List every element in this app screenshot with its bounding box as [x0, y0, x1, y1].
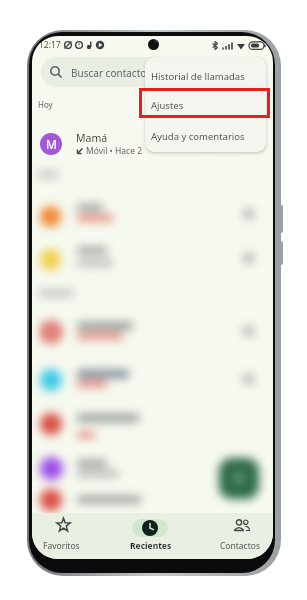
- staticText: Móvil • Hace 2: [86, 145, 143, 157]
- staticText: Hoy: [38, 99, 53, 110]
- staticText: Buscar contactos: [71, 66, 152, 80]
- button[interactable]: Historial de llamadas: [145, 57, 266, 90]
- button[interactable]: Ayuda y comentarios: [145, 120, 266, 152]
- staticText: Favoritos: [43, 540, 80, 552]
- button[interactable]: Buscar contactos: [41, 57, 259, 87]
- staticText: 12:17: [39, 39, 61, 51]
- staticText: Recientes: [130, 540, 172, 552]
- staticText: Historial de llamadas: [151, 70, 245, 83]
- staticText: Mamá: [76, 131, 108, 145]
- staticText: M: [46, 136, 57, 152]
- button[interactable]: Favoritos: [36, 515, 92, 556]
- staticText: Contactos: [220, 540, 260, 552]
- button[interactable]: [219, 458, 259, 499]
- button[interactable]: Contactos: [212, 515, 270, 556]
- button[interactable]: M: [32, 131, 262, 157]
- staticText: Ayuda y comentarios: [151, 130, 245, 143]
- staticText: Ajustes: [151, 99, 184, 112]
- button[interactable]: Ajustes: [145, 90, 266, 120]
- button[interactable]: Recientes: [119, 515, 181, 556]
